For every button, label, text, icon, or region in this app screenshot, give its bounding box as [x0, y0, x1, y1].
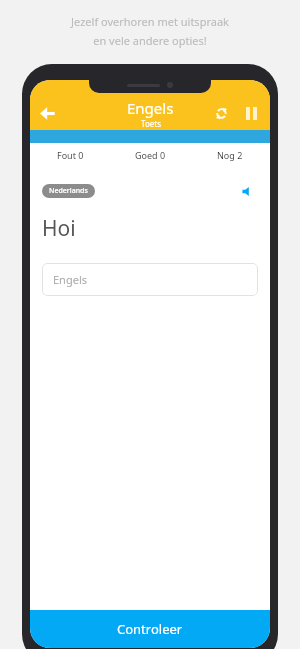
button[interactable]: Controleer — [30, 610, 270, 648]
staticText: Controleer — [117, 620, 183, 638]
button[interactable]: Engels — [42, 263, 258, 296]
staticText: Nederlands — [49, 186, 88, 196]
staticText: en vele andere opties! — [93, 33, 207, 48]
staticText: Nog 2 — [217, 149, 243, 161]
staticText: Hoi — [42, 214, 76, 243]
button[interactable]: Fout 0 — [30, 143, 110, 166]
staticText: Jezelf overhoren met uitspraak — [71, 14, 229, 29]
staticText: Engels — [53, 272, 87, 287]
button[interactable]: Pauzeren — [236, 98, 266, 128]
button[interactable]: Nog 2 — [190, 143, 270, 166]
button[interactable]: Uitspraak afspelen — [236, 180, 258, 202]
button[interactable]: Terug — [30, 96, 64, 130]
button[interactable]: Goed 0 — [110, 143, 190, 166]
staticText: Goed 0 — [135, 149, 166, 161]
button[interactable]: Nederlands — [42, 184, 95, 198]
button[interactable]: Vernieuwen — [206, 98, 236, 128]
staticText: Fout 0 — [57, 149, 84, 161]
staticText: Toets — [141, 118, 161, 129]
staticText: Engels — [127, 98, 174, 118]
